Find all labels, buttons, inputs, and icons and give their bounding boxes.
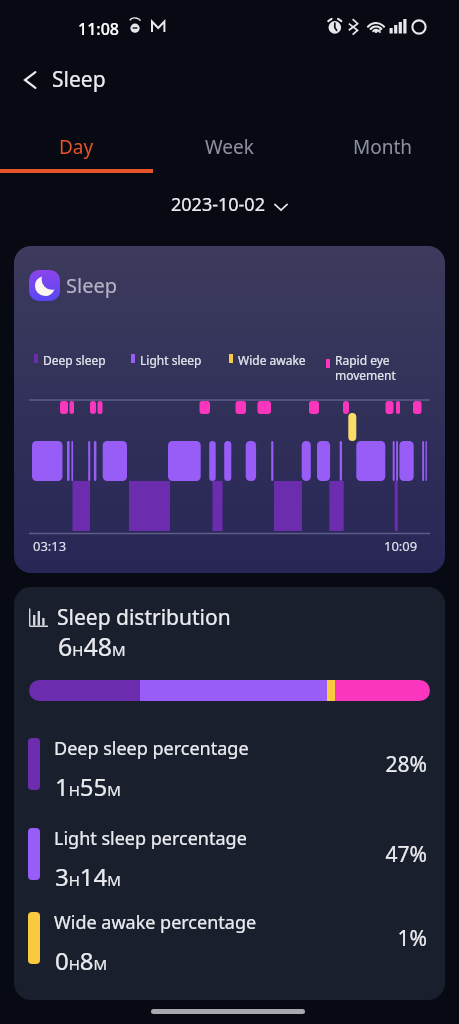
staticText: Rapid eye movement: [335, 352, 396, 383]
staticText: Wide awake: [238, 352, 306, 368]
button[interactable]: 2023-10-02: [165, 188, 294, 221]
button[interactable]: Deep sleep percentage: [14, 730, 445, 798]
staticText: Sleep: [52, 65, 106, 94]
staticText: 0H8M: [55, 944, 108, 977]
staticText: Day: [59, 134, 94, 160]
staticText: Sleep: [66, 272, 117, 299]
button[interactable]: Wide awake percentage: [14, 904, 445, 972]
staticText: 1%: [369, 924, 427, 953]
staticText: Light sleep percentage: [54, 826, 247, 851]
staticText: 03:13: [33, 537, 67, 555]
staticText: 11:08: [78, 18, 119, 40]
staticText: Wide awake percentage: [54, 910, 257, 935]
staticText: Deep sleep percentage: [54, 736, 249, 761]
staticText: 1H55M: [55, 770, 121, 803]
staticText: Week: [205, 134, 254, 160]
button[interactable]: Week: [153, 117, 306, 177]
button[interactable]: Sleep: [14, 246, 445, 573]
staticText: Month: [353, 134, 413, 160]
staticText: Sleep distribution: [57, 603, 231, 632]
staticText: 10:09: [384, 537, 418, 555]
button[interactable]: Back: [13, 63, 47, 97]
staticText: 6H48M: [58, 629, 126, 663]
staticText: Light sleep: [140, 352, 202, 368]
staticText: Deep sleep: [43, 352, 106, 368]
staticText: 2023-10-02: [171, 192, 265, 217]
button[interactable]: Day: [0, 117, 153, 177]
button[interactable]: Month: [306, 117, 459, 177]
button[interactable]: Light sleep percentage: [14, 820, 445, 888]
staticText: 28%: [369, 750, 427, 779]
staticText: 47%: [369, 840, 427, 869]
staticText: 3H14M: [55, 860, 121, 893]
